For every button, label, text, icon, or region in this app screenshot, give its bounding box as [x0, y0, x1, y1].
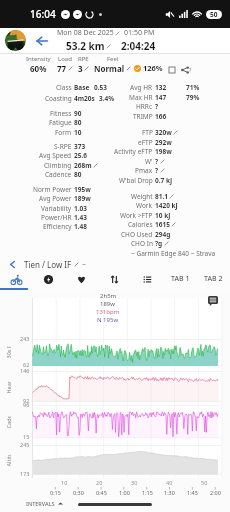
- button[interactable]: Back: [33, 32, 51, 50]
- button[interactable]: Tien / Low IF: [8, 259, 230, 270]
- staticText: 81.1: [155, 192, 168, 201]
- staticText: 90: [74, 109, 82, 118]
- staticText: 147: [155, 93, 167, 102]
- staticText: Avg Power: [39, 194, 72, 203]
- button[interactable]: Power: [32, 270, 65, 288]
- staticText: 1.03: [74, 204, 87, 213]
- staticText: RPE: [78, 55, 89, 63]
- staticText: Pmax: [135, 166, 153, 175]
- button[interactable]: Profile: [5, 30, 26, 51]
- staticText: Norm Power: [33, 185, 72, 194]
- staticText: 16:04: [30, 7, 56, 21]
- staticText: Avg Speed: [39, 151, 72, 160]
- staticText: 146: [20, 367, 30, 374]
- staticText: Altitude: [4, 454, 11, 466]
- staticText: W'bal Drop: [119, 176, 153, 185]
- staticText: 1:45: [187, 489, 198, 496]
- staticText: TRIMP: [133, 112, 153, 121]
- staticText: CHO Used: [121, 230, 153, 239]
- button[interactable]: Comments: [206, 294, 219, 307]
- staticText: 0.7 kJ: [155, 176, 173, 185]
- button[interactable]: Ride: [0, 270, 32, 288]
- staticText: 1:00: [119, 489, 130, 496]
- staticText: S-RPE: [54, 142, 72, 151]
- staticText: Avg HR: [130, 83, 153, 92]
- staticText: 71%: [186, 83, 200, 92]
- staticText: 292w: [155, 138, 172, 147]
- staticText: 25.6: [74, 151, 87, 160]
- button[interactable]: Compare: [98, 270, 131, 288]
- staticText: 373: [74, 142, 86, 151]
- staticText: 30: [131, 479, 138, 486]
- staticText: 1:30: [164, 489, 175, 496]
- staticText: Power/HR: [41, 213, 72, 222]
- staticText: 3.4%: [99, 94, 115, 103]
- staticText: 01:50 PM: [124, 28, 155, 38]
- staticText: 10: [61, 479, 68, 486]
- staticText: Fatigue: [49, 118, 72, 127]
- staticText: 1615: [155, 220, 170, 229]
- staticText: 92: [23, 397, 30, 404]
- staticText: FTP: [142, 128, 153, 137]
- staticText: 53.2 km: [66, 39, 105, 53]
- staticText: 10 kJ: [155, 211, 171, 220]
- staticText: 2:00: [210, 489, 221, 496]
- staticText: 198w: [155, 147, 172, 156]
- staticText: Calories: [128, 220, 153, 229]
- staticText: Coasting: [45, 94, 72, 103]
- staticText: 0:15: [50, 489, 61, 496]
- staticText: Intensity: [26, 55, 51, 63]
- staticText: Class: [56, 83, 72, 92]
- staticText: INTERVALS: [26, 500, 55, 507]
- button[interactable]: INTERVALS: [26, 500, 63, 507]
- staticText: Climbing: [44, 161, 72, 170]
- staticText: Activity eFTP: [114, 147, 153, 156]
- staticText: 40: [166, 479, 173, 486]
- staticText: 0:30: [73, 489, 84, 496]
- staticText: ?: [155, 157, 159, 166]
- staticText: 15: [23, 433, 30, 440]
- staticText: 79%: [186, 93, 200, 102]
- staticText: N 195w: [97, 316, 119, 324]
- staticText: 4m20s: [74, 94, 95, 103]
- staticText: 132: [155, 83, 167, 92]
- staticText: 62: [23, 361, 30, 368]
- staticText: 1420 kJ: [155, 201, 178, 210]
- staticText: 320w: [155, 128, 172, 137]
- staticText: Base: [74, 83, 90, 92]
- staticText: 131bpm: [96, 308, 120, 316]
- button[interactable]: List: [131, 270, 164, 288]
- staticText: Work: [136, 201, 153, 210]
- staticText: Efficiency: [43, 222, 72, 231]
- staticText: 80: [74, 170, 82, 179]
- staticText: Feel: [107, 55, 119, 63]
- staticText: ?: [189, 66, 192, 73]
- staticText: 0:45: [96, 489, 107, 496]
- staticText: 3: [78, 63, 83, 74]
- staticText: Variability: [41, 204, 72, 213]
- staticText: Max HR: [129, 93, 153, 102]
- staticText: ~: [82, 260, 87, 270]
- staticText: 126%: [143, 63, 163, 73]
- staticText: Fitness: [50, 109, 72, 118]
- staticText: 189w: [74, 194, 91, 203]
- staticText: 96: [23, 401, 30, 408]
- staticText: 1:15: [142, 489, 153, 496]
- staticText: 195w: [74, 185, 91, 194]
- staticText: ?: [155, 102, 159, 111]
- staticText: ?g: [155, 239, 163, 248]
- staticText: 245: [20, 441, 30, 448]
- staticText: 2h5m: [100, 292, 117, 300]
- staticText: Cadence: [45, 170, 72, 179]
- staticText: Form: [55, 128, 72, 137]
- staticText: 60%: [30, 63, 47, 74]
- button[interactable]: TAB 1: [164, 270, 197, 288]
- staticText: 1.48: [74, 222, 87, 231]
- button[interactable]: TAB 2: [197, 270, 230, 288]
- staticText: 294g: [155, 230, 171, 239]
- staticText: Cadence: [4, 416, 11, 428]
- staticText: 80: [74, 118, 82, 127]
- button[interactable]: Heart rate: [65, 270, 98, 288]
- staticText: 30s Power: [4, 346, 11, 358]
- staticText: HRRc: [136, 102, 153, 111]
